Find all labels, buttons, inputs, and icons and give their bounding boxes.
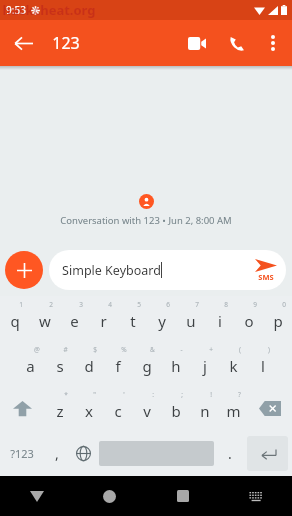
button[interactable]: (: [219, 341, 248, 386]
staticText: +: [209, 345, 213, 354]
staticText: u: [186, 311, 196, 331]
button[interactable]: Backspace: [248, 386, 292, 431]
staticText: 123: [52, 32, 80, 54]
button[interactable]: *: [45, 386, 74, 431]
staticText: .: [228, 444, 232, 463]
staticText: %: [121, 345, 127, 354]
button[interactable]: 8: [205, 296, 234, 341]
staticText: b: [171, 401, 181, 421]
staticText: *: [64, 390, 68, 399]
button[interactable]: 4: [89, 296, 118, 341]
button[interactable]: +: [190, 341, 219, 386]
staticText: d: [84, 356, 94, 376]
staticText: ,: [55, 444, 59, 463]
button[interactable]: :: [132, 386, 161, 431]
staticText: ": [93, 390, 96, 399]
staticText: g: [142, 356, 152, 376]
staticText: t: [130, 311, 136, 331]
staticText: ): [268, 345, 270, 354]
button[interactable]: ,: [43, 431, 70, 476]
staticText: 5: [137, 300, 141, 309]
button[interactable]: ?: [219, 386, 248, 431]
staticText: v: [143, 401, 151, 421]
staticText: 3: [79, 300, 83, 309]
staticText: 7: [195, 300, 199, 309]
button[interactable]: Back: [0, 20, 46, 66]
staticText: -: [180, 345, 183, 354]
button[interactable]: ;: [161, 386, 190, 431]
staticText: f: [115, 356, 121, 376]
staticText: Simple Keyboard: [62, 262, 161, 279]
button[interactable]: 5: [118, 296, 147, 341]
staticText: l: [261, 356, 265, 376]
button[interactable]: Enter: [247, 436, 288, 471]
staticText: j: [203, 356, 207, 376]
staticText: 0: [282, 300, 286, 309]
button[interactable]: -: [161, 341, 190, 386]
button[interactable]: %: [103, 341, 132, 386]
staticText: h: [171, 356, 181, 376]
staticText: ;: [181, 390, 183, 399]
staticText: ?: [238, 390, 241, 399]
staticText: $: [93, 345, 97, 354]
button[interactable]: 7: [176, 296, 205, 341]
staticText: q: [10, 311, 20, 331]
staticText: #: [63, 345, 68, 354]
button[interactable]: 9: [234, 296, 263, 341]
staticText: :: [152, 390, 154, 399]
button[interactable]: 2: [30, 296, 60, 341]
button[interactable]: Back: [0, 476, 73, 516]
staticText: (: [239, 345, 241, 354]
button[interactable]: &: [132, 341, 161, 386]
button[interactable]: $: [74, 341, 103, 386]
staticText: p: [273, 311, 283, 331]
button[interactable]: ': [103, 386, 132, 431]
button[interactable]: Video call: [176, 22, 218, 64]
button[interactable]: @: [16, 341, 45, 386]
button[interactable]: Send SMS: [255, 259, 277, 282]
button[interactable]: Call: [218, 24, 256, 62]
staticText: i: [218, 311, 222, 331]
button[interactable]: 6: [147, 296, 176, 341]
staticText: &: [150, 345, 155, 354]
staticText: a: [26, 356, 35, 376]
staticText: !: [210, 390, 212, 399]
button[interactable]: Recent apps: [146, 476, 219, 516]
button[interactable]: ?123: [0, 431, 43, 476]
staticText: 1: [19, 300, 23, 309]
button[interactable]: ": [74, 386, 103, 431]
button[interactable]: 1: [0, 296, 30, 341]
button[interactable]: Attach: [5, 251, 43, 289]
staticText: k: [229, 356, 238, 376]
staticText: s: [56, 356, 64, 376]
staticText: z: [56, 401, 64, 421]
button[interactable]: .: [216, 431, 243, 476]
button[interactable]: Home: [73, 476, 146, 516]
button[interactable]: #: [45, 341, 74, 386]
staticText: @: [34, 345, 40, 354]
staticText: SMS: [258, 272, 274, 282]
button[interactable]: Shift: [0, 386, 45, 431]
staticText: 4: [108, 300, 112, 309]
staticText: c: [114, 401, 122, 421]
button[interactable]: 0: [263, 296, 292, 341]
staticText: x: [85, 401, 93, 421]
staticText: 9:53: [6, 3, 26, 17]
staticText: w: [39, 311, 51, 331]
staticText: ': [123, 390, 125, 399]
staticText: hackcheat.org: [2, 1, 96, 19]
button[interactable]: !: [190, 386, 219, 431]
button[interactable]: More options: [256, 26, 290, 60]
button[interactable]: Change language: [70, 431, 97, 476]
staticText: 6: [166, 300, 170, 309]
staticText: r: [100, 311, 107, 331]
staticText: e: [70, 311, 79, 331]
button[interactable]: Keyboard: [219, 476, 292, 516]
button[interactable]: Simple Keyboard: [49, 250, 286, 290]
staticText: n: [200, 401, 210, 421]
button[interactable]: ): [248, 341, 277, 386]
staticText: 2: [49, 300, 53, 309]
button[interactable]: 3: [60, 296, 89, 341]
staticText: m: [226, 401, 241, 421]
